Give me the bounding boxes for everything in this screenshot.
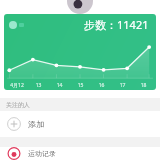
button[interactable]: 运动记录 (0, 147, 160, 160)
staticText: 15 (70, 82, 91, 89)
staticText: 4月12 (6, 82, 28, 89)
staticText: 13 (28, 82, 49, 89)
staticText: 18 (133, 82, 154, 89)
staticText: 关注的人 (6, 101, 30, 109)
button[interactable]: Profile avatar (67, 0, 93, 14)
staticText: 运动记录 (28, 149, 56, 158)
button[interactable]: 添加 (0, 111, 160, 137)
staticText: 步数：11421 (84, 17, 149, 32)
staticText: 17 (112, 82, 133, 89)
button[interactable]: 步数：11421 (4, 14, 156, 90)
staticText: 添加 (28, 119, 44, 129)
staticText: 16 (91, 82, 112, 89)
staticText: 14 (49, 82, 70, 89)
